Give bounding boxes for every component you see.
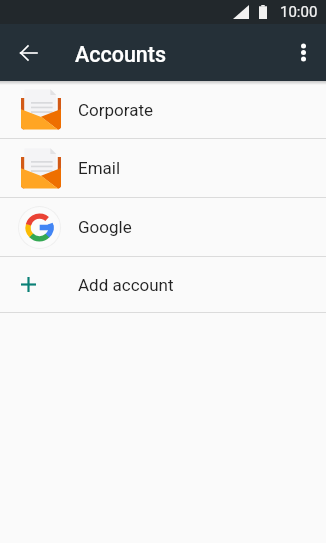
staticText: Accounts [75, 42, 167, 67]
staticText: Corporate [78, 100, 154, 120]
staticText: Google [78, 217, 132, 237]
button[interactable]: Back [8, 32, 49, 73]
button[interactable]: More options [283, 32, 324, 73]
button[interactable]: Corporate [0, 81, 326, 138]
button[interactable]: Email [0, 139, 326, 197]
staticText: Email [78, 158, 121, 178]
staticText: 10:00 [280, 3, 318, 21]
button[interactable]: Google [0, 198, 326, 256]
staticText: Add account [78, 275, 174, 295]
button[interactable]: Add account [0, 257, 326, 312]
